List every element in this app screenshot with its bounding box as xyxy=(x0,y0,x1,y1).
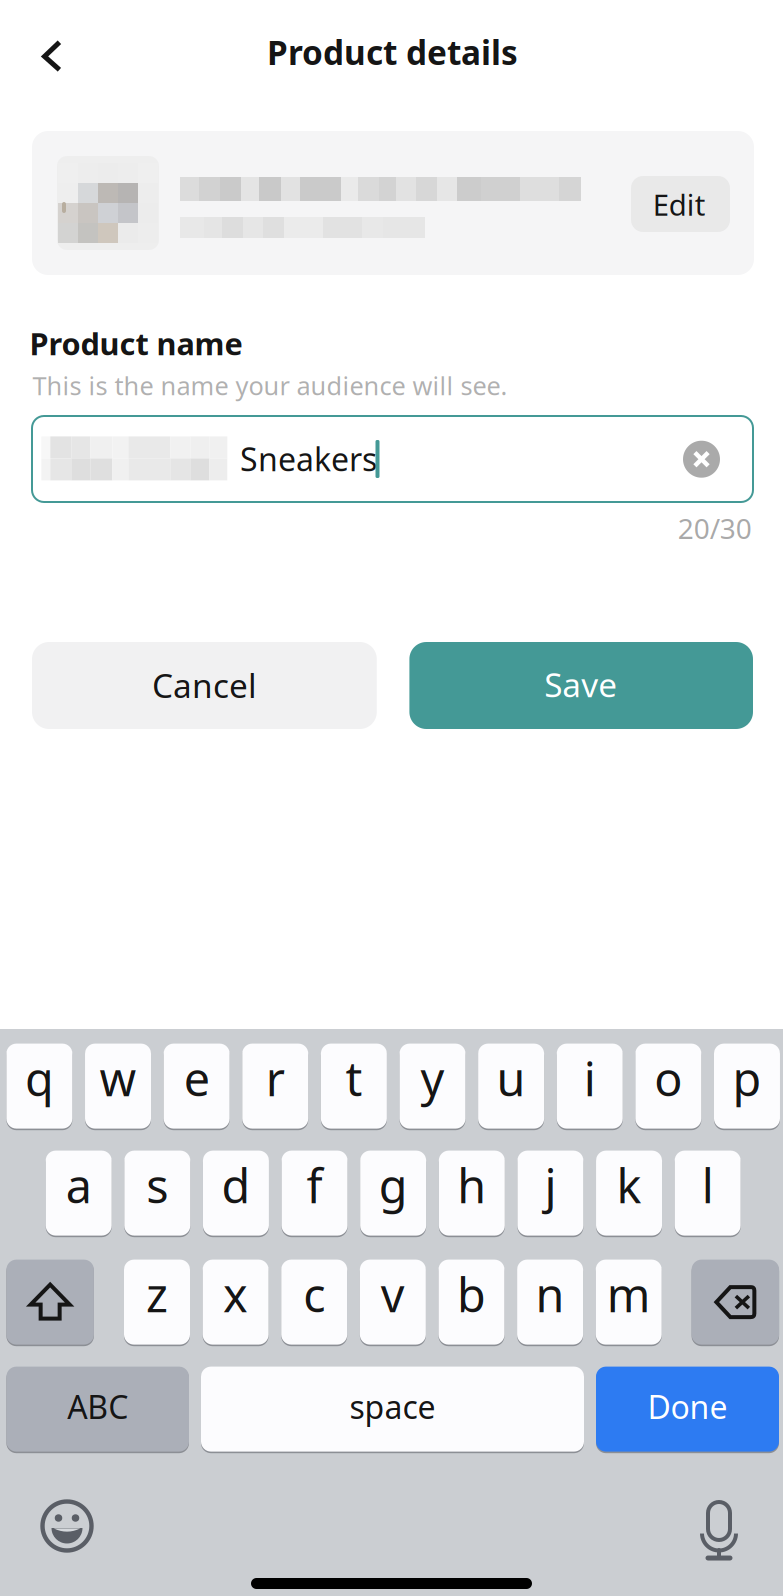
staticText: t xyxy=(345,1047,362,1109)
button[interactable]: x xyxy=(203,1258,269,1346)
staticText: ABC xyxy=(67,1385,128,1428)
button[interactable]: g xyxy=(360,1149,426,1237)
staticText: b xyxy=(457,1263,486,1325)
staticText: Save xyxy=(544,662,617,707)
button[interactable]: Back xyxy=(21,25,83,87)
button[interactable]: n xyxy=(517,1258,583,1346)
staticText: l xyxy=(702,1154,714,1216)
staticText: j xyxy=(544,1154,556,1216)
button[interactable]: o xyxy=(635,1042,701,1130)
button[interactable]: c xyxy=(281,1258,347,1346)
staticText: c xyxy=(303,1263,325,1325)
button[interactable]: h xyxy=(439,1149,505,1237)
button[interactable]: v xyxy=(360,1258,426,1346)
button[interactable]: t xyxy=(321,1042,387,1130)
button[interactable]: l xyxy=(675,1149,741,1237)
staticText: d xyxy=(221,1154,250,1216)
staticText: Edit xyxy=(653,185,706,224)
staticText: Product details xyxy=(267,30,518,74)
button[interactable]: s xyxy=(124,1149,190,1237)
button[interactable]: e xyxy=(164,1042,230,1130)
button[interactable]: d xyxy=(203,1149,269,1237)
staticText: n xyxy=(536,1263,565,1325)
button[interactable]: a xyxy=(46,1149,112,1237)
button[interactable]: space xyxy=(201,1365,584,1453)
staticText: w xyxy=(99,1047,136,1109)
button[interactable]: Cancel xyxy=(32,642,377,729)
staticText: s xyxy=(146,1154,168,1216)
button[interactable]: f xyxy=(282,1149,348,1237)
button[interactable]: r xyxy=(242,1042,308,1130)
staticText: q xyxy=(25,1047,54,1109)
button[interactable]: y xyxy=(399,1042,465,1130)
button[interactable]: Dictation xyxy=(684,1496,754,1566)
button[interactable]: i xyxy=(557,1042,623,1130)
staticText: e xyxy=(184,1047,210,1109)
staticText: p xyxy=(732,1047,761,1109)
button[interactable]: z xyxy=(124,1258,190,1346)
button[interactable]: w xyxy=(85,1042,151,1130)
staticText: k xyxy=(616,1154,641,1216)
button[interactable]: Edit xyxy=(631,176,730,232)
button[interactable]: b xyxy=(438,1258,504,1346)
button[interactable]: Clear text xyxy=(673,431,729,487)
staticText: f xyxy=(307,1154,323,1216)
staticText: z xyxy=(146,1263,168,1325)
staticText: Done xyxy=(647,1385,727,1428)
staticText: v xyxy=(381,1263,405,1325)
staticText: a xyxy=(66,1154,92,1216)
button[interactable]: Shift xyxy=(6,1258,94,1346)
staticText: This is the name your audience will see. xyxy=(33,368,508,402)
staticText: u xyxy=(497,1047,526,1109)
button[interactable]: Emoji xyxy=(32,1491,102,1561)
staticText: Cancel xyxy=(152,663,257,707)
button[interactable]: q xyxy=(6,1042,72,1130)
button[interactable]: p xyxy=(714,1042,780,1130)
staticText: m xyxy=(607,1263,651,1325)
button[interactable]: u xyxy=(478,1042,544,1130)
staticText: i xyxy=(584,1047,596,1109)
staticText: Sneakers xyxy=(240,438,377,480)
staticText: h xyxy=(457,1154,486,1216)
staticText: Product name xyxy=(29,323,242,364)
button[interactable]: m xyxy=(596,1258,662,1346)
button[interactable]: j xyxy=(517,1149,583,1237)
button[interactable]: ABC xyxy=(6,1365,189,1453)
button[interactable]: Delete xyxy=(692,1258,779,1346)
staticText: space xyxy=(349,1385,435,1428)
staticText: x xyxy=(223,1263,248,1325)
staticText: o xyxy=(654,1047,682,1109)
staticText: y xyxy=(420,1047,444,1109)
staticText: 20/30 xyxy=(678,510,752,547)
staticText: g xyxy=(379,1154,408,1216)
button[interactable]: Save xyxy=(409,642,753,729)
button[interactable]: k xyxy=(596,1149,662,1237)
staticText: r xyxy=(266,1047,285,1109)
button[interactable]: Done xyxy=(596,1365,779,1453)
